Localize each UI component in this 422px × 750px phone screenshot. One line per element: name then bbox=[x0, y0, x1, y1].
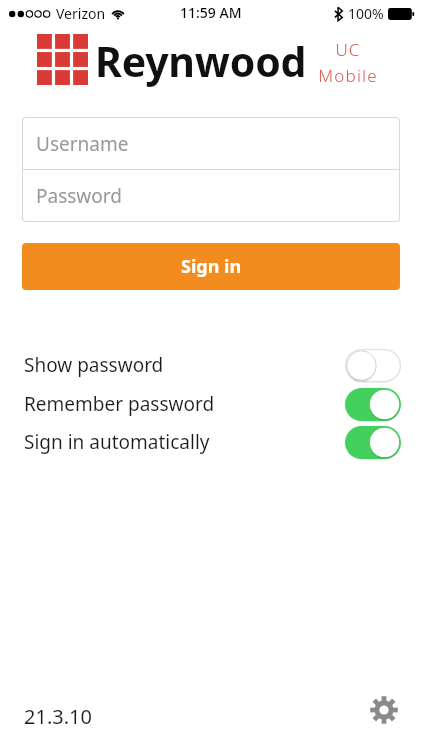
staticText: Sign in automatically bbox=[24, 429, 210, 455]
staticText: Mobile bbox=[318, 64, 378, 87]
button[interactable]: Settings bbox=[368, 694, 400, 726]
button[interactable]: Password bbox=[22, 169, 400, 222]
button[interactable]: Remember password bbox=[0, 385, 422, 423]
staticText: Show password bbox=[24, 352, 164, 378]
button[interactable]: Show password bbox=[0, 345, 422, 385]
staticText: 11:59 AM bbox=[180, 3, 242, 22]
staticText: Sign in bbox=[181, 254, 242, 279]
staticText: Remember password bbox=[24, 391, 215, 417]
staticText: Password bbox=[36, 183, 122, 209]
staticText: 100% bbox=[348, 4, 384, 23]
staticText: Verizon bbox=[56, 4, 106, 23]
button[interactable]: Sign in automatically bbox=[0, 423, 422, 461]
staticText: UC bbox=[335, 38, 361, 61]
staticText: Reynwood bbox=[95, 33, 307, 89]
button[interactable]: Sign in bbox=[22, 243, 400, 290]
staticText: Username bbox=[36, 131, 129, 157]
staticText: 21.3.10 bbox=[24, 703, 92, 730]
button[interactable]: Username bbox=[22, 117, 400, 170]
